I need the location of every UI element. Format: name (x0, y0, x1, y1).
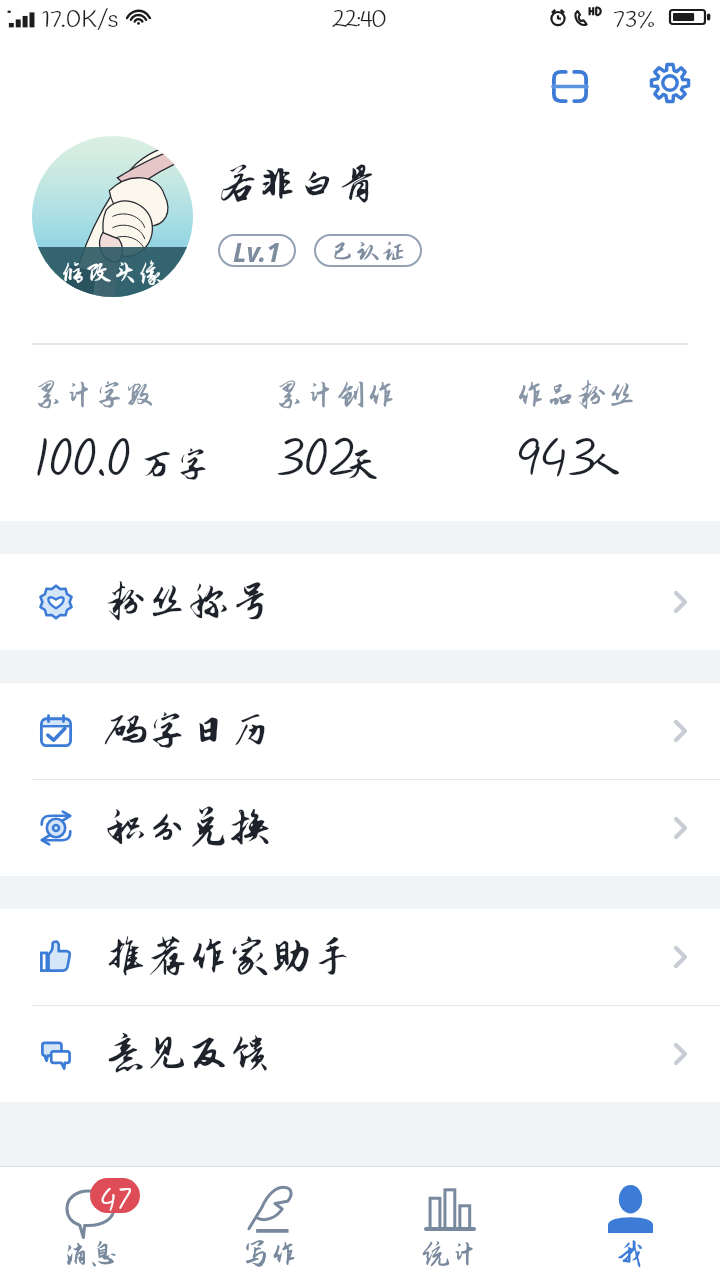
staticText: 统计 (422, 1239, 478, 1270)
staticText: 人 (583, 445, 619, 485)
staticText: 47 (99, 1178, 131, 1212)
staticText: 累计字数 (33, 378, 156, 412)
staticText: 天 (345, 445, 381, 485)
staticText: 意见反馈 (105, 1031, 271, 1077)
button[interactable]: 我 (540, 1167, 720, 1280)
staticText: 若非白骨 (218, 162, 377, 206)
staticText: 17.0K/s (42, 5, 119, 37)
staticText: 写作 (242, 1239, 298, 1270)
staticText: 累计创作 (274, 378, 397, 412)
staticText: 修改头像 (60, 258, 165, 287)
staticText: 943 (515, 419, 594, 505)
staticText: 粉丝称号 (105, 579, 271, 625)
staticText: 100.0 (33, 419, 129, 505)
button[interactable]: Change avatar (32, 136, 193, 297)
button[interactable]: 写作 (180, 1167, 360, 1280)
staticText: 73% (613, 5, 655, 37)
staticText: 万字 (139, 445, 211, 485)
button[interactable]: 粉丝称号 (0, 554, 720, 650)
staticText: 已认证 (330, 237, 406, 265)
button[interactable]: Lv.1 (218, 234, 296, 267)
button[interactable]: 推荐作家助手 (0, 909, 720, 1005)
staticText: 302 (274, 419, 356, 505)
button[interactable]: 统计 (360, 1167, 540, 1280)
button[interactable]: 47 (0, 1167, 180, 1280)
staticText: 积分兑换 (105, 805, 271, 851)
button[interactable]: 码字日历 (0, 683, 720, 779)
staticText: 推荐作家助手 (105, 934, 354, 980)
button[interactable]: Settings (644, 57, 696, 109)
button[interactable]: 积分兑换 (0, 780, 720, 876)
staticText: 作品粉丝 (515, 378, 638, 412)
button[interactable]: 意见反馈 (0, 1006, 720, 1102)
button[interactable]: Scan QR code (544, 60, 596, 112)
staticText: 22:40 (332, 5, 385, 37)
staticText: 我 (616, 1239, 644, 1270)
staticText: 码字日历 (105, 708, 271, 754)
staticText: 消息 (62, 1239, 118, 1270)
staticText: Lv.1 (233, 234, 281, 267)
button[interactable]: 已认证 (314, 234, 422, 267)
